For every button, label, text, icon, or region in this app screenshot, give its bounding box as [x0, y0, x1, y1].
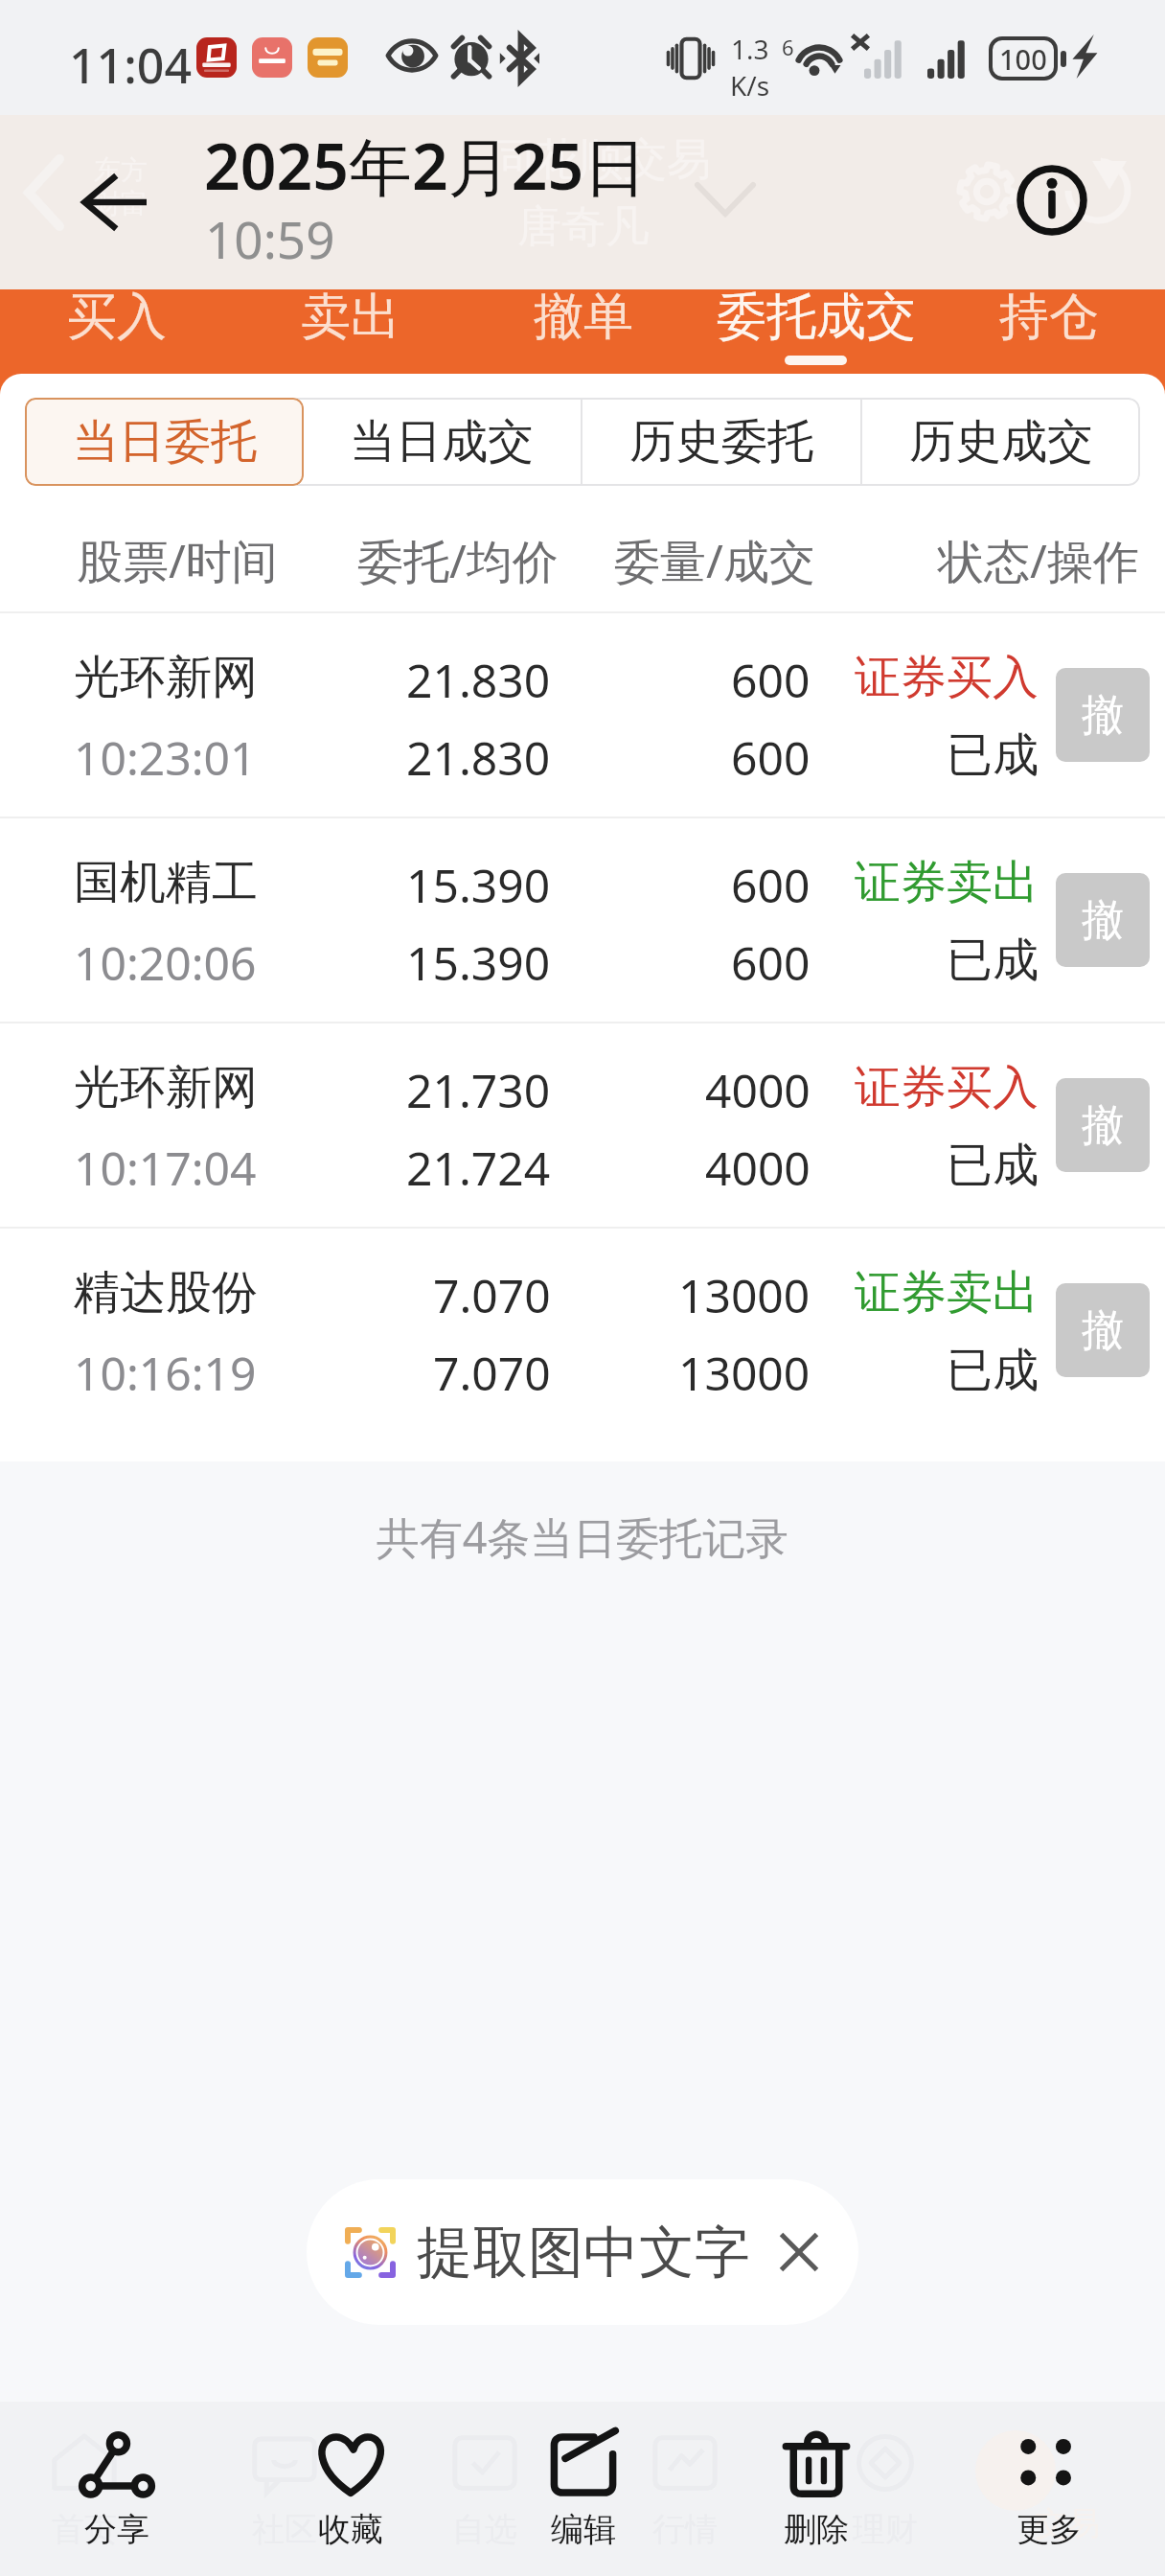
staticText: 10:23:01: [74, 726, 257, 789]
staticText: 600: [731, 931, 811, 994]
staticText: 10:20:06: [74, 931, 257, 994]
staticText: 10:17:04: [74, 1137, 257, 1199]
staticText: 6: [782, 33, 794, 61]
staticText: 同花顺交易: [491, 132, 711, 188]
staticText: 2025年2月25日: [204, 122, 648, 208]
staticText: 10:59: [205, 204, 335, 273]
button[interactable]: Close: [773, 2226, 825, 2278]
staticText: 15.390: [406, 931, 551, 994]
button[interactable]: 撤: [1056, 873, 1150, 967]
button[interactable]: 当日成交: [303, 398, 581, 486]
button[interactable]: 精达股份: [0, 1229, 1165, 1432]
button[interactable]: 撤: [1056, 1078, 1150, 1172]
staticText: 委托/均价: [357, 529, 559, 592]
staticText: 证券买入: [855, 649, 1039, 706]
staticText: 15.390: [406, 854, 551, 916]
button[interactable]: 提取图中文字: [307, 2179, 858, 2325]
staticText: 7.070: [433, 1342, 551, 1404]
staticText: 21.830: [406, 649, 551, 711]
staticText: 4000: [705, 1059, 811, 1121]
button[interactable]: Info: [1009, 157, 1095, 243]
staticText: 分享: [84, 2509, 149, 2550]
button[interactable]: 历史委托: [582, 398, 860, 486]
button[interactable]: 买入: [0, 289, 234, 374]
staticText: 财富: [94, 187, 148, 220]
staticText: 当日委托: [73, 413, 257, 471]
staticText: 社区: [239, 2509, 331, 2550]
staticText: 提取图中文字: [417, 2218, 750, 2288]
staticText: 状态/操作: [938, 529, 1139, 592]
staticText: 证券卖出: [855, 854, 1039, 911]
staticText: 已成: [947, 1342, 1039, 1399]
staticText: 撤: [1082, 894, 1124, 947]
staticText: 历史成交: [909, 413, 1093, 471]
staticText: 更多: [1017, 2509, 1082, 2550]
button[interactable]: 撤单: [467, 289, 699, 374]
staticText: 撤: [1082, 1099, 1124, 1152]
staticText: 13000: [678, 1264, 811, 1326]
button[interactable]: 分享: [0, 2402, 234, 2576]
staticText: 委托成交: [717, 286, 916, 349]
button[interactable]: 委托成交: [699, 289, 932, 374]
staticText: 证券买入: [855, 1059, 1039, 1116]
staticText: 股票/时间: [77, 529, 278, 592]
staticText: 已成: [947, 1137, 1039, 1194]
button[interactable]: 当日委托: [25, 398, 304, 486]
staticText: 撤单: [534, 286, 633, 349]
staticText: 4000: [705, 1137, 811, 1199]
staticText: 交易: [1035, 2503, 1100, 2544]
staticText: 共有4条当日委托记录: [0, 1507, 1165, 1566]
staticText: 光环新网: [74, 649, 258, 706]
button[interactable]: 收藏: [234, 2402, 467, 2576]
staticText: 1.3: [731, 31, 769, 67]
staticText: 已成: [947, 931, 1039, 989]
staticText: 精达股份: [74, 1264, 258, 1322]
staticText: 11:04: [69, 33, 192, 98]
staticText: 删除: [784, 2509, 849, 2550]
button[interactable]: 国机精工: [0, 818, 1165, 1022]
button[interactable]: 卖出: [234, 289, 467, 374]
staticText: 已成: [947, 726, 1039, 784]
staticText: 撤: [1082, 689, 1124, 742]
button[interactable]: 编辑: [467, 2402, 699, 2576]
button[interactable]: 撤: [1056, 668, 1150, 762]
staticText: 唐奇凡: [517, 199, 650, 255]
button[interactable]: 光环新网: [0, 1023, 1165, 1227]
staticText: 600: [731, 854, 811, 916]
button[interactable]: [25, 398, 303, 486]
staticText: 当日成交: [350, 413, 534, 471]
staticText: 21.830: [406, 726, 551, 789]
staticText: 历史委托: [629, 413, 813, 471]
staticText: 光环新网: [74, 1059, 258, 1116]
staticText: 撤: [1082, 1304, 1124, 1357]
staticText: 东方: [94, 153, 148, 187]
staticText: 收藏: [318, 2509, 383, 2550]
button[interactable]: 持仓: [932, 289, 1165, 374]
staticText: K/s: [730, 67, 770, 103]
staticText: 买入: [67, 286, 167, 349]
staticText: 21.730: [406, 1059, 551, 1121]
staticText: 10:16:19: [74, 1342, 257, 1404]
staticText: 21.724: [406, 1137, 551, 1199]
button[interactable]: 删除: [699, 2402, 932, 2576]
staticText: 国机精工: [74, 854, 258, 911]
button[interactable]: 光环新网: [0, 613, 1165, 816]
staticText: 100: [999, 40, 1047, 78]
staticText: 编辑: [551, 2509, 616, 2550]
staticText: 13000: [678, 1342, 811, 1404]
staticText: 首页: [38, 2509, 130, 2550]
staticText: 600: [731, 726, 811, 789]
staticText: 理财: [839, 2509, 931, 2550]
staticText: 600: [731, 649, 811, 711]
button[interactable]: 撤: [1056, 1283, 1150, 1377]
staticText: 证券卖出: [855, 1264, 1039, 1322]
staticText: 卖出: [301, 286, 400, 349]
staticText: 持仓: [999, 286, 1099, 349]
staticText: 委量/成交: [614, 529, 815, 592]
button[interactable]: 历史成交: [862, 398, 1140, 486]
staticText: 7.070: [433, 1264, 551, 1326]
button[interactable]: Back: [67, 154, 163, 250]
button[interactable]: 更多: [932, 2402, 1165, 2576]
